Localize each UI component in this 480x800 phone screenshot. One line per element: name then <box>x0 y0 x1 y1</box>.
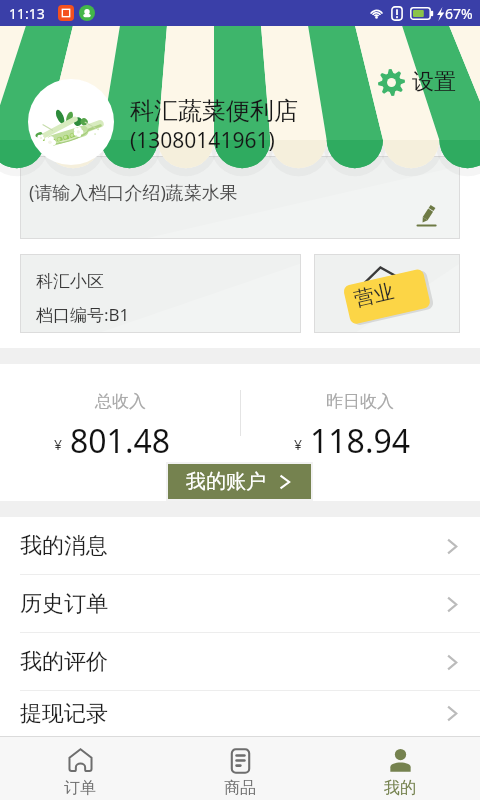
button[interactable]: 我的消息 <box>0 517 480 575</box>
staticText: 档口编号:B1 <box>36 303 130 326</box>
button[interactable]: 设置 <box>374 62 460 102</box>
staticText: ¥ <box>54 435 63 454</box>
staticText: 提现记录 <box>20 700 108 728</box>
staticText: 801.48 <box>70 419 171 463</box>
staticText: 我的账户 <box>186 469 266 494</box>
staticText: (13080141961) <box>130 126 275 155</box>
staticText: (请输入档口介绍)蔬菜水果 <box>29 180 238 205</box>
button[interactable]: (请输入档口介绍)蔬菜水果 <box>20 156 460 239</box>
staticText: 商品 <box>224 778 256 798</box>
staticText: 科汇蔬菜便利店 <box>130 96 298 126</box>
button[interactable]: 我的 <box>320 737 480 800</box>
button[interactable]: 提现记录 <box>0 691 480 736</box>
staticText: 昨日收入 <box>326 391 394 412</box>
other: 编辑 <box>416 204 440 228</box>
button[interactable]: 科汇小区 <box>20 254 301 333</box>
button[interactable]: 我的账户 <box>166 462 313 501</box>
button[interactable]: 我的评价 <box>0 633 480 691</box>
staticText: 67% <box>445 4 473 23</box>
button[interactable]: 营业状态 <box>314 254 460 333</box>
staticText: 科汇小区 <box>36 271 104 292</box>
button[interactable]: 历史订单 <box>0 575 480 633</box>
button[interactable]: 订单 <box>0 737 160 800</box>
staticText: 营业 <box>352 279 396 312</box>
staticText: 118.94 <box>310 419 411 463</box>
staticText: 我的消息 <box>20 532 108 560</box>
staticText: 设置 <box>412 68 456 96</box>
staticText: 我的评价 <box>20 648 108 676</box>
staticText: 总收入 <box>95 391 146 412</box>
staticText: 订单 <box>64 778 96 798</box>
staticText: 历史订单 <box>20 590 108 618</box>
staticText: ¥ <box>294 435 303 454</box>
staticText: 我的 <box>384 778 416 798</box>
staticText: 11:13 <box>9 4 45 23</box>
button[interactable]: 商品 <box>160 737 320 800</box>
